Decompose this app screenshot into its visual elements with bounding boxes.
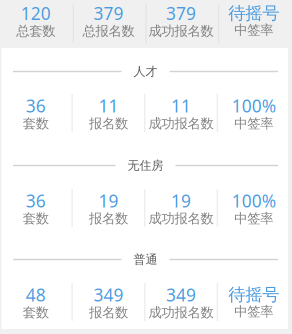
staticText: 普通 xyxy=(133,252,157,267)
staticText: 成功报名数 xyxy=(148,23,213,39)
staticText: 成功报名数 xyxy=(148,210,213,227)
staticText: 11 xyxy=(98,94,118,117)
staticText: 349 xyxy=(166,283,196,306)
staticText: 48 xyxy=(26,283,46,306)
staticText: 36 xyxy=(26,94,46,117)
staticText: 套数 xyxy=(23,115,49,132)
staticText: 套数 xyxy=(23,304,49,321)
staticText: 中签率 xyxy=(234,115,273,132)
staticText: 成功报名数 xyxy=(148,115,213,132)
staticText: 报名数 xyxy=(89,304,128,321)
button[interactable]: 36 xyxy=(1,189,288,227)
staticText: 19 xyxy=(171,189,191,212)
staticText: 无住房 xyxy=(127,158,163,173)
staticText: 379 xyxy=(93,2,123,25)
button[interactable]: 120 xyxy=(1,0,288,46)
staticText: 100% xyxy=(232,189,276,212)
staticText: 11 xyxy=(171,94,191,117)
staticText: 报名数 xyxy=(89,210,128,227)
staticText: 120 xyxy=(21,2,51,25)
staticText: 总套数 xyxy=(16,23,55,39)
staticText: 中签率 xyxy=(234,210,273,227)
staticText: 19 xyxy=(98,189,118,212)
staticText: 100% xyxy=(232,94,276,117)
staticText: 待摇号 xyxy=(228,3,279,24)
staticText: 套数 xyxy=(23,210,49,227)
staticText: 人才 xyxy=(133,64,157,79)
staticText: 报名数 xyxy=(89,115,128,132)
staticText: 36 xyxy=(26,189,46,212)
staticText: 中签率 xyxy=(234,303,273,320)
staticText: 中签率 xyxy=(234,22,273,38)
staticText: 待摇号 xyxy=(228,284,279,305)
button[interactable]: 48 xyxy=(1,283,288,321)
staticText: 总报名数 xyxy=(82,23,134,39)
staticText: 379 xyxy=(166,2,196,25)
staticText: 成功报名数 xyxy=(148,304,213,321)
staticText: 349 xyxy=(93,283,123,306)
button[interactable]: 36 xyxy=(1,94,288,132)
